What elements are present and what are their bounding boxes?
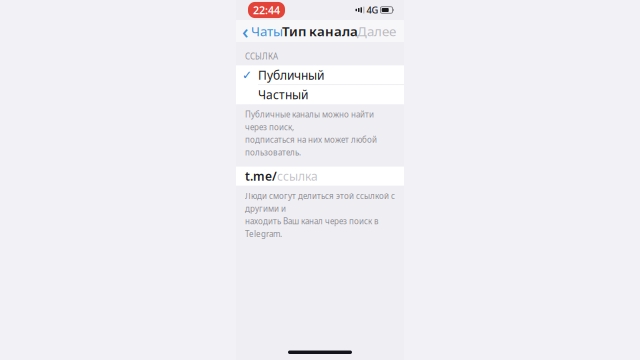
staticText: 22:44 <box>253 3 280 17</box>
staticText: Публичные каналы можно найти через поиск… <box>245 109 377 158</box>
button[interactable]: ‹ <box>236 14 283 48</box>
button[interactable]: ✓ <box>236 66 404 85</box>
staticText: ‹ <box>242 18 249 44</box>
staticText: Чаты <box>251 22 283 40</box>
staticText: ссылка <box>277 168 318 184</box>
staticText: Публичный <box>258 67 324 83</box>
staticText: Люди смогут делиться этой ссылкой с друг… <box>245 191 395 239</box>
button[interactable]: t.me/ <box>236 167 404 186</box>
staticText: t.me/ <box>245 168 277 184</box>
button[interactable]: Частный <box>236 85 404 104</box>
staticText: Тип канала <box>282 22 358 40</box>
staticText: ССЫЛКА <box>245 51 278 62</box>
staticText: 4G <box>366 4 378 16</box>
button[interactable]: Далее <box>357 18 404 44</box>
staticText: Далее <box>357 22 396 40</box>
staticText: ✓ <box>242 68 252 82</box>
staticText: Частный <box>258 87 308 103</box>
